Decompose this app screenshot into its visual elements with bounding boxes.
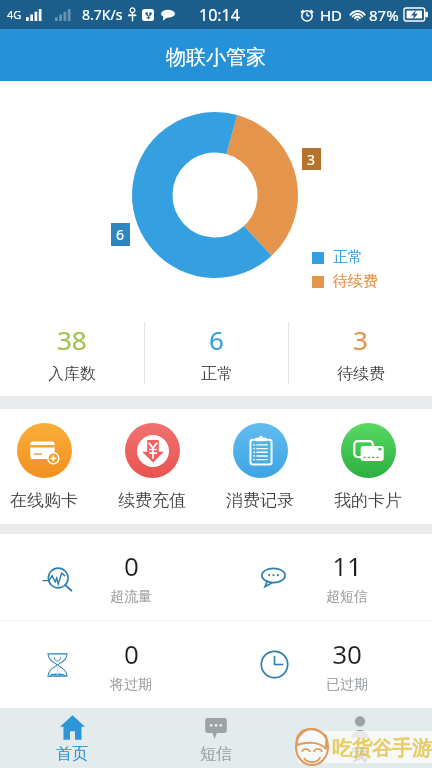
staticText: 正常 (201, 364, 233, 384)
staticText: 超流量 (110, 588, 152, 606)
staticText: 3 (307, 150, 316, 169)
staticText: 入库数 (48, 364, 96, 384)
staticText: 待续费 (337, 364, 385, 384)
staticText: 超短信 (326, 588, 368, 606)
button[interactable]: 我 (288, 708, 432, 768)
staticText: 3 (353, 322, 368, 357)
staticText: 短信 (200, 744, 232, 764)
staticText: 在线购卡 (10, 490, 78, 511)
button[interactable]: 首页 (0, 708, 144, 768)
button[interactable]: 续费充值 (98, 409, 206, 524)
staticText: 我 (352, 744, 368, 764)
staticText: 已过期 (326, 676, 368, 694)
button[interactable]: 6 (145, 310, 288, 396)
button[interactable]: 0 (0, 621, 216, 708)
staticText: 首页 (56, 744, 88, 764)
staticText: HD (320, 5, 343, 25)
staticText: 0 (124, 548, 139, 583)
staticText: 38 (57, 322, 87, 357)
staticText: 消费记录 (226, 490, 294, 511)
staticText: 11 (332, 548, 362, 583)
staticText: 吃货谷手游 (332, 736, 432, 761)
button[interactable]: 在线购卡 (0, 409, 98, 524)
button[interactable]: 38 (0, 310, 144, 396)
staticText: 87% (369, 5, 399, 25)
staticText: 我 (351, 745, 367, 765)
staticText: 物联小管家 (166, 45, 266, 70)
staticText: 续费充值 (118, 490, 186, 511)
staticText: 我的卡片 (334, 490, 402, 511)
staticText: 4G (7, 7, 22, 22)
staticText: 正常 (333, 248, 363, 267)
button[interactable]: 物联小管家 (0, 29, 432, 81)
button[interactable]: 0 (0, 534, 216, 620)
staticText: 6 (116, 225, 125, 244)
staticText: 10:14 (199, 4, 240, 26)
button[interactable]: 消费记录 (206, 409, 314, 524)
staticText: 待续费 (333, 272, 378, 291)
staticText: 8.7K/s (82, 5, 123, 24)
button[interactable]: 我的卡片 (314, 409, 422, 524)
button[interactable]: 3 (289, 310, 432, 396)
button[interactable]: 11 (216, 534, 432, 620)
button[interactable]: 30 (216, 621, 432, 708)
staticText: 将过期 (110, 676, 152, 694)
staticText: 6 (209, 322, 224, 357)
button[interactable]: 短信 (144, 708, 288, 768)
staticText: 30 (332, 636, 362, 671)
staticText: 0 (124, 636, 139, 671)
